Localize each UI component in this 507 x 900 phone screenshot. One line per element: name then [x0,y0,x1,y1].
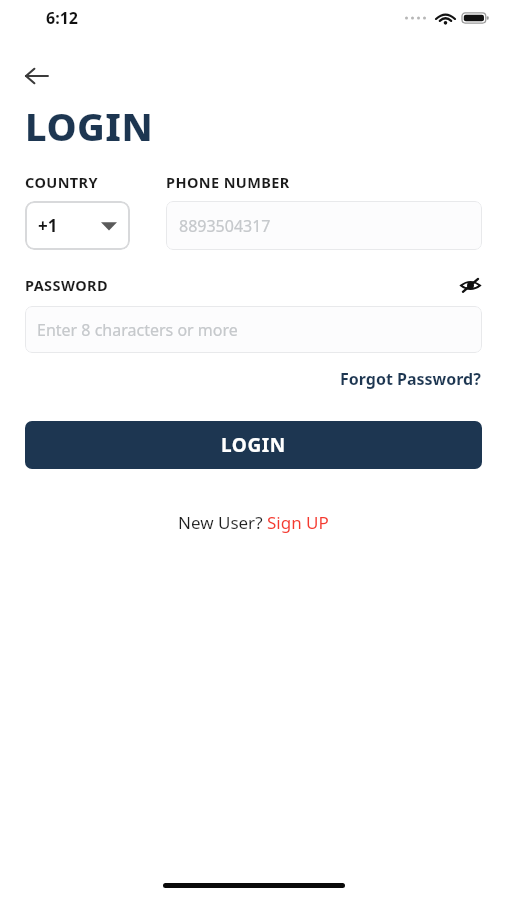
staticText: Sign UP [267,511,329,534]
staticText: 8893504317 [179,215,271,237]
staticText: LOGIN [25,100,154,152]
staticText: 6:12 [46,7,78,29]
button[interactable]: Back [16,54,60,98]
staticText: Forgot Password? [340,368,481,390]
button[interactable]: Forgot Password? [338,365,483,393]
button[interactable]: LOGIN [25,421,482,469]
button[interactable]: Show password [455,270,485,300]
staticText: PHONE NUMBER [166,172,290,192]
button[interactable]: Enter 8 characters or more [25,306,482,353]
staticText: +1 [38,214,58,237]
staticText: COUNTRY [25,172,98,192]
staticText: New User? [178,511,267,534]
button[interactable]: Sign UP [267,511,329,534]
staticText: LOGIN [221,432,286,458]
staticText: PASSWORD [25,275,108,295]
staticText: Enter 8 characters or more [37,319,238,341]
button[interactable]: 8893504317 [166,201,482,250]
button[interactable]: +1 [25,201,130,250]
